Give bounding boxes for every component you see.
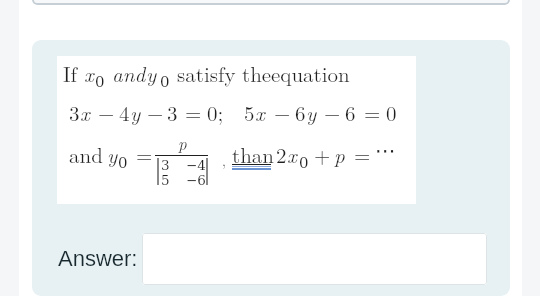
staticText: 5	[244, 97, 255, 127]
staticText: x	[84, 58, 94, 88]
staticText: 3	[69, 97, 80, 127]
staticText: Answer:	[58, 246, 138, 271]
staticText: ⋯	[375, 139, 396, 163]
staticText: =	[364, 97, 381, 127]
staticText: −	[147, 97, 164, 127]
staticText: 0	[118, 154, 128, 171]
button[interactable]	[231, 145, 272, 170]
staticText: x	[287, 139, 297, 169]
staticText: 0	[299, 154, 309, 171]
staticText: =	[185, 97, 202, 127]
staticText: x	[80, 97, 90, 127]
staticText: 5	[161, 172, 170, 188]
staticText: −6	[186, 172, 206, 188]
staticText: 3	[161, 157, 170, 173]
staticText: =	[354, 139, 371, 169]
staticText: 0;	[207, 97, 224, 127]
staticText: y	[130, 97, 141, 127]
staticText: than	[232, 139, 275, 169]
button[interactable]: Question text field	[32, 0, 510, 5]
staticText: 3	[167, 97, 178, 127]
staticText: ,	[222, 150, 226, 170]
staticText: y	[107, 139, 118, 169]
staticText: y	[146, 58, 157, 88]
staticText: x	[255, 97, 265, 127]
staticText: and	[112, 58, 146, 88]
staticText: 6	[295, 97, 306, 127]
staticText: p	[334, 139, 345, 169]
staticText: p	[178, 131, 187, 155]
staticText: and	[69, 139, 103, 169]
staticText: 0	[160, 73, 170, 90]
staticText: If	[63, 58, 78, 88]
staticText: −	[274, 97, 291, 127]
staticText: satisfy	[177, 58, 236, 88]
staticText: =	[136, 139, 153, 169]
staticText: 0	[95, 73, 105, 90]
staticText: +	[314, 139, 331, 169]
staticText: −4	[186, 157, 206, 173]
staticText: the	[242, 58, 272, 88]
staticText: 0	[386, 97, 397, 127]
staticText: equation	[271, 58, 350, 88]
staticText: 6	[345, 97, 356, 127]
staticText: 2	[276, 139, 287, 169]
staticText: −	[324, 97, 341, 127]
staticText: y	[306, 97, 317, 127]
button[interactable]: Answer input	[142, 233, 487, 285]
staticText: −	[98, 97, 115, 127]
staticText: 4	[119, 97, 130, 127]
